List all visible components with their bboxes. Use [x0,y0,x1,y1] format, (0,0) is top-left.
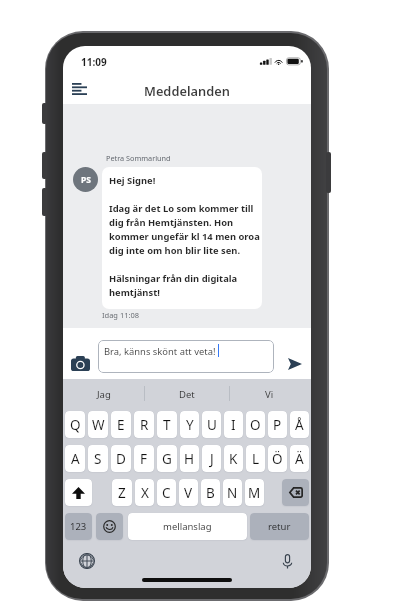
staticText: R [140,416,149,434]
button[interactable]: Backspace [282,479,309,506]
button[interactable]: F [134,445,154,472]
button[interactable]: Emoji [96,513,123,540]
button[interactable]: E [111,411,131,438]
staticText: mellanslag [163,520,212,533]
staticText: J [210,450,214,468]
button[interactable]: K [224,445,243,472]
staticText: U [207,416,217,434]
button[interactable]: mellanslag [128,513,247,540]
button[interactable]: Menu [66,76,92,102]
button[interactable]: P [268,411,287,438]
button[interactable]: J [202,445,221,472]
button[interactable]: Jag [63,381,145,407]
button[interactable]: Q [65,411,85,438]
staticText: Hej Signe! Idag är det Lo som kommer til… [109,174,260,299]
staticText: F [140,450,148,468]
button[interactable]: S [88,445,108,472]
staticText: Bra, känns skönt att veta! [104,345,216,358]
staticText: I [231,416,236,434]
button[interactable]: W [88,411,108,438]
button[interactable]: B [201,479,220,506]
button[interactable]: Hej Signe! Idag är det Lo som kommer til… [102,167,262,309]
button[interactable]: Y [180,411,199,438]
staticText: 11:09 [81,55,107,69]
staticText: L [252,450,260,468]
staticText: X [141,484,149,502]
button[interactable]: Petra Sommarlund avatar [73,167,98,192]
button[interactable]: Ö [268,445,287,472]
staticText: A [71,450,80,468]
button[interactable]: Det [145,381,228,407]
button[interactable]: 123 [65,513,92,540]
button[interactable]: Bra, känns skönt att veta! [98,340,274,373]
button[interactable]: Ä [290,445,309,472]
button[interactable]: U [202,411,221,438]
staticText: Jag [97,388,111,401]
button[interactable]: Change keyboard [77,551,97,571]
staticText: 123 [70,520,87,533]
staticText: retur [268,520,291,533]
staticText: C [162,484,171,502]
button[interactable]: C [157,479,176,506]
staticText: N [227,484,238,502]
button[interactable]: Send [284,354,306,374]
button[interactable]: H [180,445,199,472]
staticText: Ä [295,450,304,468]
staticText: T [163,416,171,434]
button[interactable]: Camera [67,352,93,374]
staticText: Å [295,416,304,434]
staticText: Det [179,388,195,401]
button[interactable]: Shift [65,479,92,506]
button[interactable]: Vi [228,381,311,407]
button[interactable]: Dictate [277,551,297,571]
button[interactable]: N [223,479,242,506]
staticText: W [92,416,105,434]
staticText: M [248,484,261,502]
button[interactable]: I [224,411,243,438]
staticText: Petra Sommarlund [106,153,171,163]
button[interactable]: R [134,411,154,438]
staticText: Vi [265,388,274,401]
button[interactable]: G [157,445,177,472]
staticText: Meddelanden [144,82,230,99]
staticText: Q [70,416,81,434]
button[interactable]: A [65,445,85,472]
button[interactable]: O [246,411,265,438]
staticText: Z [118,484,126,502]
staticText: E [117,416,125,434]
button[interactable]: Z [112,479,132,506]
staticText: K [229,450,238,468]
staticText: Idag 11:08 [102,310,140,320]
staticText: V [184,484,193,502]
staticText: H [184,450,195,468]
button[interactable]: retur [250,513,309,540]
staticText: D [116,450,126,468]
staticText: PS [81,174,91,186]
staticText: P [273,416,282,434]
button[interactable]: V [179,479,198,506]
staticText: Ö [272,450,283,468]
button[interactable]: Å [290,411,309,438]
staticText: S [94,450,102,468]
button[interactable]: M [245,479,264,506]
button[interactable]: X [135,479,154,506]
staticText: Y [186,416,194,434]
staticText: O [250,416,261,434]
button[interactable]: L [246,445,265,472]
staticText: G [162,450,172,468]
staticText: B [206,484,215,502]
button[interactable]: T [157,411,177,438]
button[interactable]: D [111,445,131,472]
